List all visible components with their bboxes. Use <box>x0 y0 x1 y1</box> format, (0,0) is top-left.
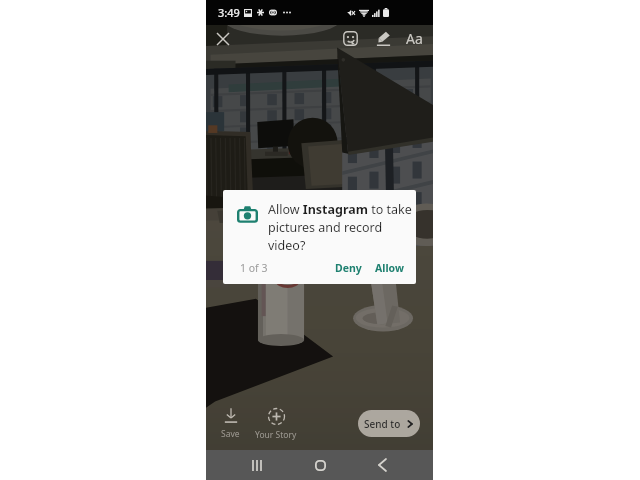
staticText: 1 of 3 <box>240 261 268 275</box>
button[interactable]: Stickers <box>342 30 358 46</box>
button[interactable]: Draw <box>375 30 391 46</box>
button[interactable]: Allow <box>368 256 411 280</box>
button[interactable]: Save <box>217 406 244 442</box>
button[interactable]: Recents <box>243 451 271 479</box>
staticText: Allow <box>375 261 404 275</box>
button[interactable]: Aa <box>406 28 423 48</box>
button[interactable]: Send to <box>358 410 420 437</box>
button[interactable]: 1 of 3 <box>239 259 269 277</box>
staticText: 3:49 <box>218 5 240 20</box>
button[interactable]: Close <box>211 27 234 50</box>
staticText: Send to <box>364 417 401 431</box>
staticText: Deny <box>335 261 362 275</box>
button[interactable]: Home <box>306 451 334 479</box>
staticText: Aa <box>406 29 423 48</box>
button[interactable]: Your Story <box>251 406 301 443</box>
staticText: Allow Instagram to take pictures and rec… <box>268 201 416 254</box>
staticText: Save <box>221 428 240 440</box>
button[interactable]: Deny <box>328 256 369 280</box>
button[interactable]: Back <box>368 451 396 479</box>
staticText: Your Story <box>255 429 297 441</box>
